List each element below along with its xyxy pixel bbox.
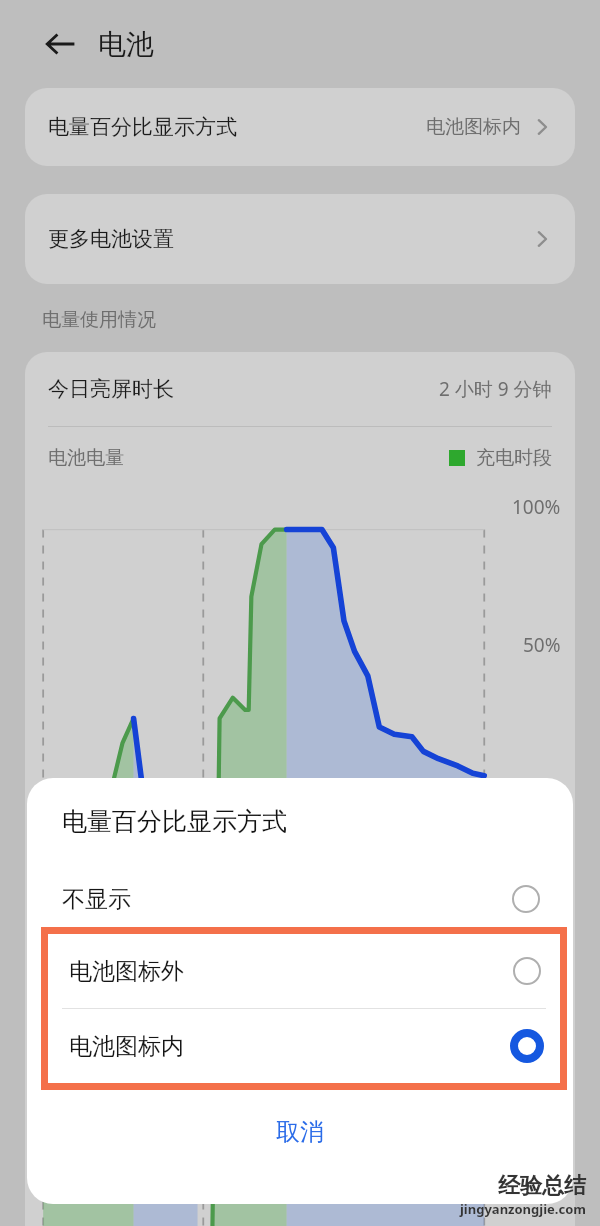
staticText: 电量百分比显示方式 [48, 114, 237, 140]
staticText: 电池图标内 [426, 115, 521, 139]
staticText: 经验总结 [498, 1172, 586, 1200]
staticText: 电池 [98, 27, 154, 62]
button[interactable]: Back [36, 20, 84, 68]
button[interactable]: 更多电池设置 [25, 194, 575, 284]
staticText: 2 小时 9 分钟 [439, 376, 552, 402]
staticText: 取消 [276, 1117, 324, 1147]
staticText: 电池电量 [48, 446, 124, 470]
staticText: 电量百分比显示方式 [62, 806, 287, 837]
staticText: 电池图标内 [69, 1032, 184, 1061]
button[interactable]: 不显示 [27, 871, 573, 927]
staticText: 今日亮屏时长 [48, 376, 174, 402]
staticText: 50% [523, 632, 561, 658]
staticText: jingyanzongjie.com [460, 1200, 586, 1218]
button[interactable]: 取消 [27, 1090, 573, 1174]
staticText: 更多电池设置 [48, 226, 174, 252]
button[interactable]: 电池图标内 [48, 1009, 560, 1083]
staticText: 电量使用情况 [42, 308, 156, 332]
staticText: 充电时段 [476, 446, 552, 470]
staticText: 100% [512, 494, 561, 520]
button[interactable]: 电池图标外 [48, 934, 560, 1008]
button[interactable]: 电量百分比显示方式 [25, 88, 575, 166]
staticText: 不显示 [62, 885, 131, 914]
staticText: 电池图标外 [69, 957, 184, 986]
